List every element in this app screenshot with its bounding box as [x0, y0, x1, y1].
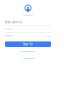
staticText: Password [5, 28, 13, 30]
staticText: Remember [5, 35, 13, 37]
staticText: Create account [22, 58, 33, 59]
staticText: Forgot? [45, 35, 51, 37]
staticText: Welcome back [23, 14, 33, 16]
button[interactable]: Forgot? [45, 35, 51, 37]
staticText: Email address [5, 20, 22, 24]
button[interactable]: Forgot password? [0, 50, 56, 53]
staticText: Sign In [23, 42, 33, 46]
button[interactable]: Sign In [5, 41, 51, 47]
button[interactable]: Create account [0, 57, 56, 60]
staticText: Forgot password? [21, 51, 35, 52]
